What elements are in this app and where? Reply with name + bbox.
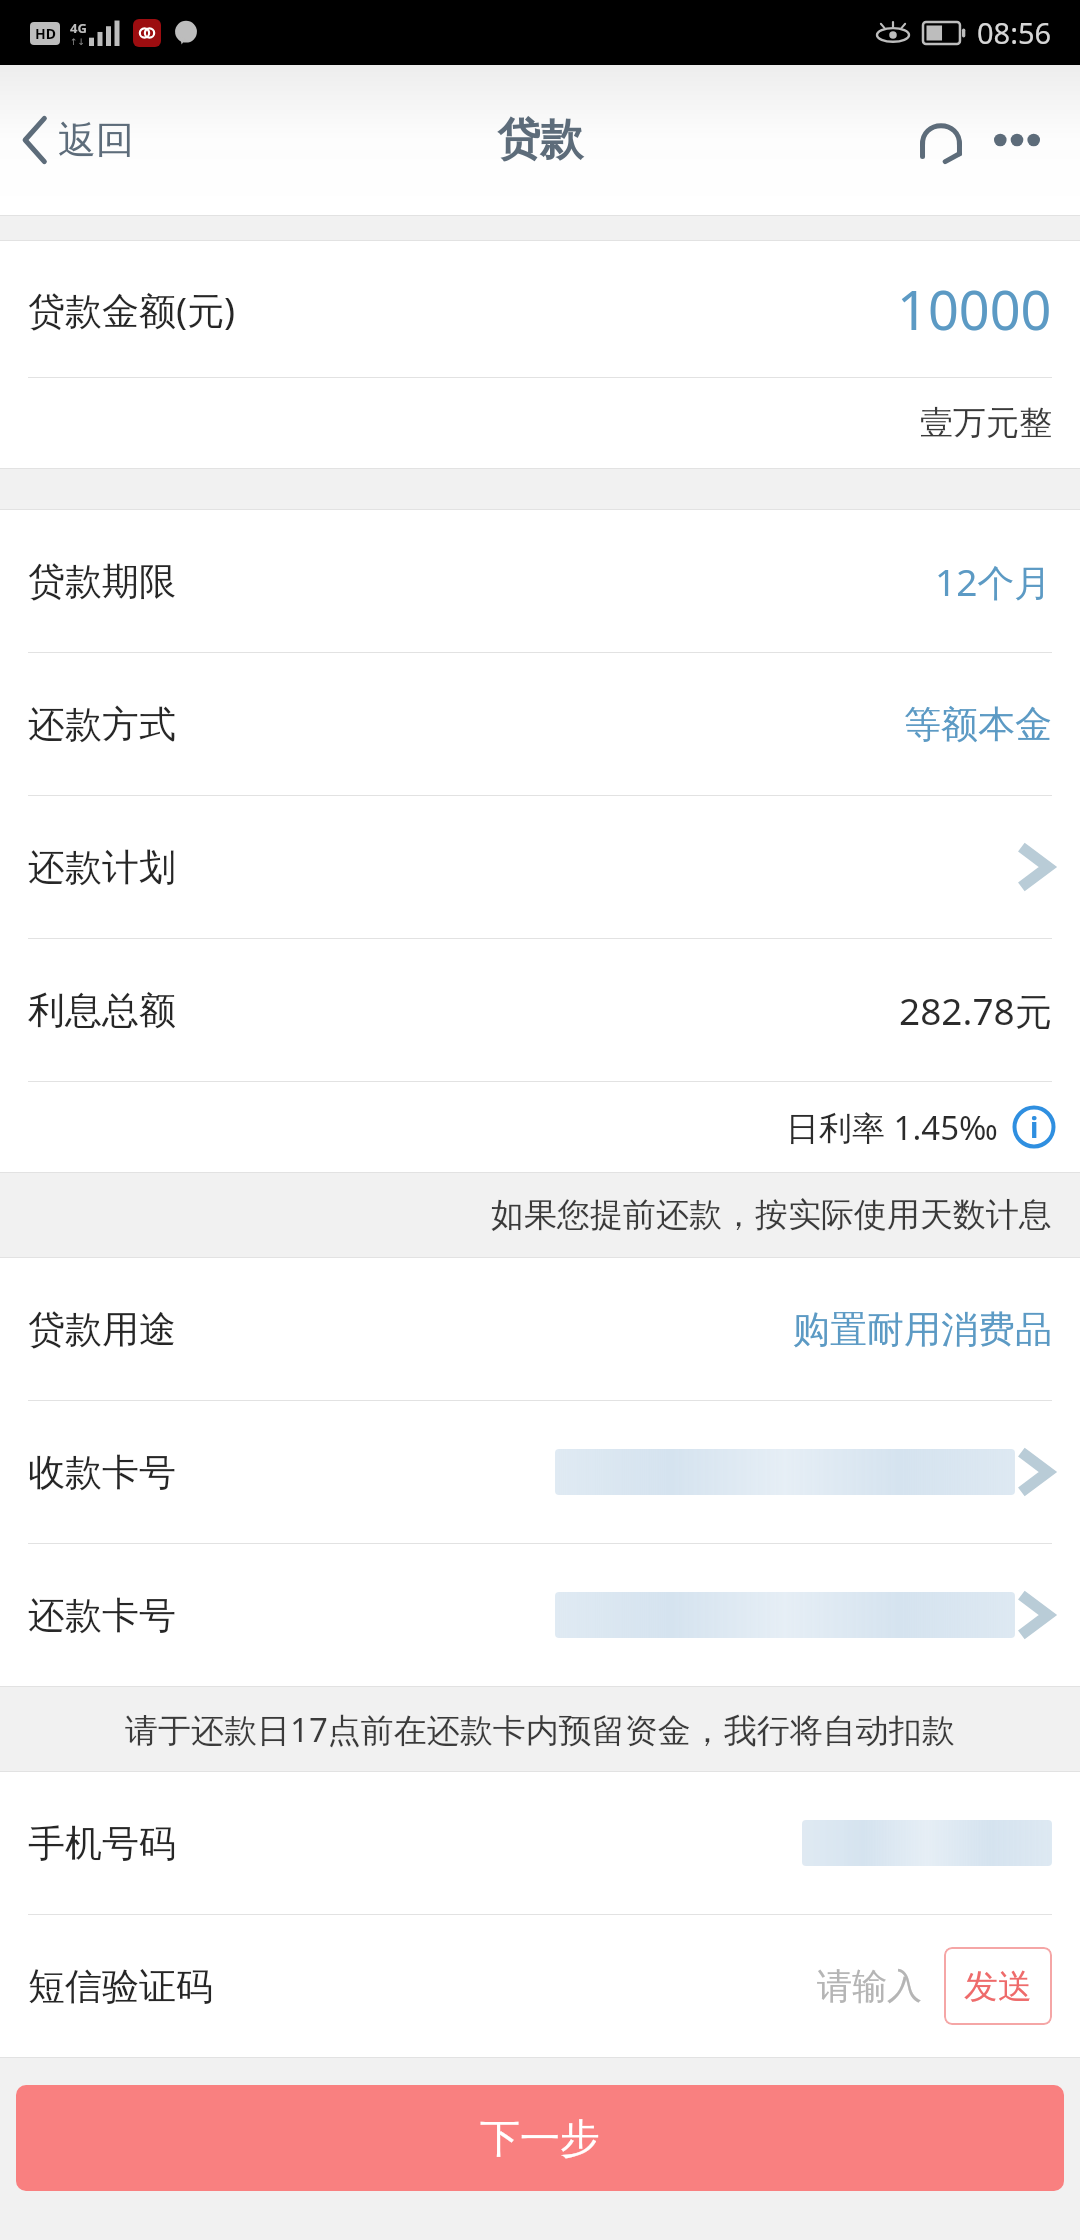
staticText: 282.78元 (899, 985, 1052, 1036)
staticText: 手机号码 (28, 1820, 176, 1867)
staticText: i (1030, 1108, 1039, 1146)
staticText: 利息总额 (28, 987, 176, 1034)
button[interactable]: 发送 (944, 1947, 1052, 2025)
staticText: 发送 (964, 1965, 1032, 2008)
other: Interest rate info (1012, 1105, 1056, 1149)
staticText: 如果您提前还款，按实际使用天数计息 (0, 1194, 1052, 1236)
staticText: 还款计划 (28, 844, 176, 891)
staticText: 请于还款日17点前在还款卡内预留资金，我行将自动扣款 (125, 1707, 955, 1752)
staticText: 日利率 1.45‰ (786, 1105, 998, 1150)
button[interactable]: 贷款期限 (0, 510, 1080, 652)
staticText: 贷款金额(元) (28, 284, 236, 335)
staticText: 贷款期限 (28, 558, 176, 605)
button[interactable]: 收款卡号 (0, 1401, 1080, 1543)
button[interactable]: More options (980, 119, 1054, 161)
button[interactable]: 贷款金额(元) (0, 241, 1080, 377)
staticText: 08:56 (977, 13, 1052, 52)
staticText: 壹万元整 (920, 402, 1052, 444)
staticText: 10000 (897, 272, 1052, 346)
button[interactable]: 贷款用途 (0, 1258, 1080, 1400)
staticText: 还款方式 (28, 701, 176, 748)
staticText: 返回 (58, 116, 134, 164)
button[interactable]: 还款卡号 (0, 1544, 1080, 1686)
staticText: 贷款用途 (28, 1306, 176, 1353)
button[interactable]: 日利率 1.45‰ (0, 1082, 1080, 1172)
staticText: 贷款 (497, 113, 583, 167)
button[interactable]: 还款计划 (0, 796, 1080, 938)
button[interactable]: 返回 (0, 102, 154, 178)
staticText: 短信验证码 (28, 1963, 213, 2010)
button[interactable]: 下一步 (16, 2085, 1064, 2191)
staticText: 下一步 (480, 2113, 600, 2163)
staticText: 12个月 (935, 556, 1052, 607)
button[interactable]: Customer service (908, 105, 974, 175)
button[interactable]: 还款方式 (0, 653, 1080, 795)
staticText: 请输入 (817, 1964, 922, 2008)
button[interactable]: 利息总额 (0, 939, 1080, 1081)
staticText: 等额本金 (904, 701, 1052, 748)
staticText: ↑↓ (70, 37, 86, 47)
staticText: 收款卡号 (28, 1449, 176, 1496)
staticText: 购置耐用消费品 (793, 1306, 1052, 1353)
staticText: 4G (70, 19, 87, 37)
staticText: HD (35, 24, 56, 43)
button[interactable]: 手机号码 (0, 1772, 1080, 1914)
button[interactable]: 短信验证码 (0, 1915, 1080, 2057)
staticText: 还款卡号 (28, 1592, 176, 1639)
